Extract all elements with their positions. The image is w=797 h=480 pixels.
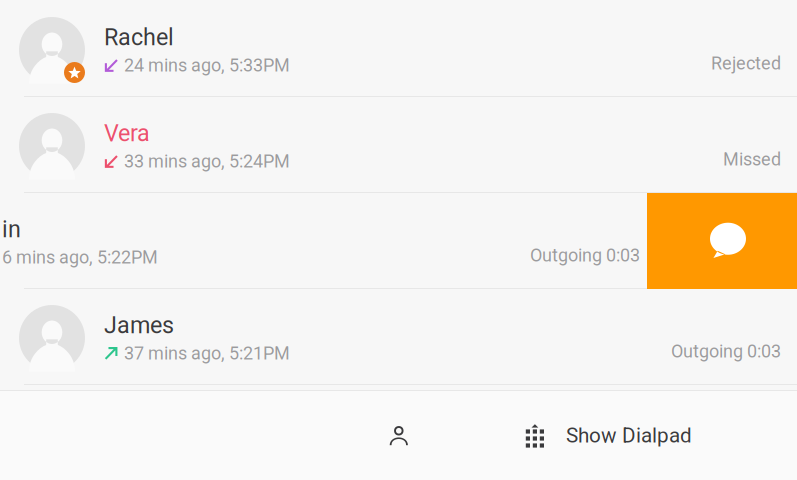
staticText: 37 mins ago, 5:21PM xyxy=(124,343,290,364)
staticText: 6 mins ago, 5:22PM xyxy=(2,247,158,268)
button[interactable]: Send message xyxy=(647,193,797,289)
button[interactable]: James xyxy=(0,289,797,385)
staticText: Rejected xyxy=(711,53,781,74)
staticText: 33 mins ago, 5:24PM xyxy=(124,151,290,172)
staticText: Vera xyxy=(104,120,150,147)
button[interactable]: Contacts xyxy=(363,391,435,479)
staticText: Show Dialpad xyxy=(566,423,692,448)
staticText: Outgoing 0:03 xyxy=(530,245,640,266)
button[interactable]: Show Dialpad xyxy=(526,391,692,479)
staticText: Rachel xyxy=(104,24,174,51)
staticText: Outgoing 0:03 xyxy=(671,341,781,362)
staticText: 24 mins ago, 5:33PM xyxy=(124,55,290,76)
button[interactable]: Vera xyxy=(0,97,797,193)
staticText: Missed xyxy=(723,149,781,170)
staticText: James xyxy=(104,312,174,339)
staticText: in xyxy=(2,216,21,243)
button[interactable]: Rachel xyxy=(0,1,797,97)
